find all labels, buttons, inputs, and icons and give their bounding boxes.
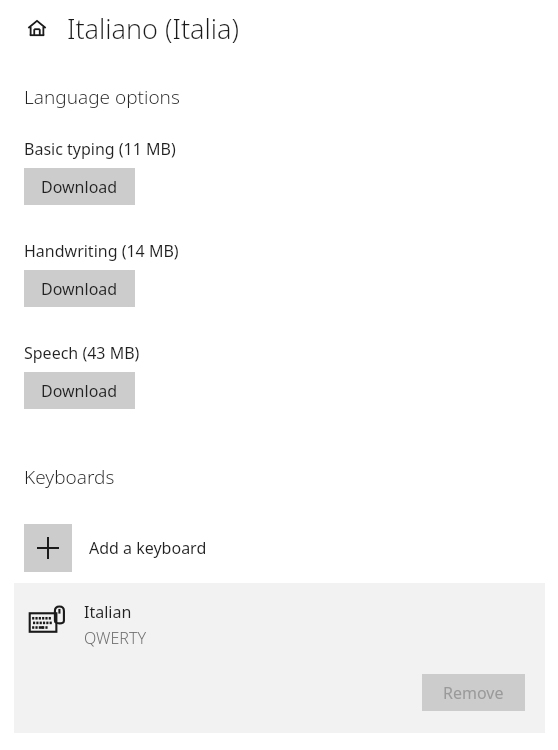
staticText: Remove (443, 682, 504, 704)
staticText: Handwriting (14 MB) (24, 240, 179, 262)
other: Add a keyboard (37, 537, 59, 559)
staticText: Language options (24, 84, 180, 110)
staticText: QWERTY (84, 627, 146, 649)
button[interactable]: Download (24, 168, 135, 205)
staticText: Italiano (Italia) (67, 10, 240, 47)
staticText: Basic typing (11 MB) (24, 138, 176, 160)
staticText: Keyboards (24, 464, 115, 490)
button[interactable]: Add a keyboard (24, 524, 254, 572)
staticText: Speech (43 MB) (24, 342, 140, 364)
button[interactable]: Keyboard layout (14, 583, 545, 733)
other: Keyboard layout (29, 606, 65, 634)
button[interactable]: Remove (422, 674, 525, 711)
staticText: Download (41, 278, 118, 300)
button[interactable]: Download (24, 270, 135, 307)
button[interactable]: Home (18, 9, 56, 47)
staticText: Add a keyboard (89, 537, 207, 559)
staticText: Download (41, 176, 118, 198)
staticText: Download (41, 380, 118, 402)
staticText: Italian (84, 601, 132, 623)
button[interactable]: Download (24, 372, 135, 409)
